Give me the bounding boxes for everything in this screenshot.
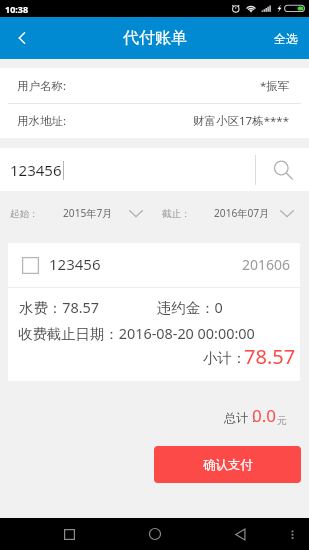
button[interactable]: Back xyxy=(224,518,256,550)
staticText: 财富小区17栋**** xyxy=(193,113,290,129)
staticText: 全选 xyxy=(274,31,298,46)
staticText: 123456 xyxy=(49,254,101,274)
staticText: 元 xyxy=(277,414,287,427)
staticText: 违约金：0 xyxy=(157,298,223,318)
staticText: 用户名称: xyxy=(17,78,67,94)
button[interactable]: 确认支付 xyxy=(154,446,301,483)
staticText: 小计： xyxy=(203,349,247,367)
staticText: 78.57 xyxy=(244,343,296,370)
staticText: 确认支付 xyxy=(203,457,253,473)
button[interactable]: Back xyxy=(0,17,44,59)
staticText: 2016年07月 xyxy=(214,206,270,220)
staticText: 0.0 xyxy=(252,404,277,427)
button[interactable]: 全选 xyxy=(260,17,309,59)
staticText: 收费截止日期：2016-08-20 00:00:00 xyxy=(18,324,255,344)
button[interactable]: 123456 xyxy=(8,243,300,381)
staticText: 123456 xyxy=(10,160,62,180)
button[interactable]: Recent apps xyxy=(53,518,85,550)
staticText: 水费：78.57 xyxy=(19,298,99,318)
button[interactable]: Home xyxy=(139,518,171,550)
staticText: 起始： xyxy=(10,208,39,220)
button[interactable]: 起始： xyxy=(0,191,154,235)
staticText: 201606 xyxy=(242,255,291,274)
staticText: 2015年7月 xyxy=(63,206,113,220)
staticText: 10:38 xyxy=(5,3,29,15)
button[interactable]: More options xyxy=(280,522,304,546)
staticText: 总计： xyxy=(224,410,260,425)
button[interactable]: 截止： xyxy=(154,191,309,235)
staticText: 截止： xyxy=(162,208,191,220)
staticText: 代付账单 xyxy=(123,28,187,48)
staticText: 用水地址: xyxy=(17,113,67,129)
staticText: *振军 xyxy=(260,78,290,94)
button[interactable]: Search xyxy=(256,148,309,191)
